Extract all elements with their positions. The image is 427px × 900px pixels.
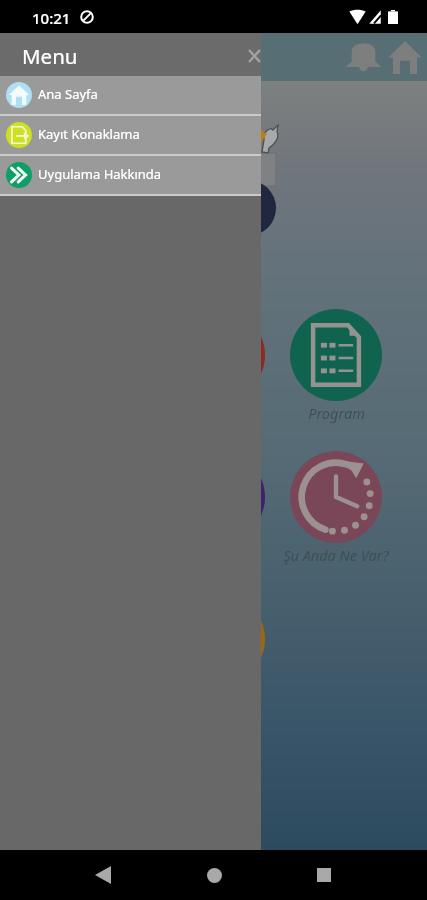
button[interactable]: Menu item — [173, 309, 265, 401]
button[interactable]: Back — [81, 853, 125, 897]
button[interactable]: Home — [192, 853, 236, 897]
staticText: 10:21 — [32, 8, 71, 28]
staticText: Menu — [22, 42, 78, 70]
button[interactable]: Menu item — [173, 593, 265, 685]
button[interactable]: Recents — [302, 853, 346, 897]
staticText: Uygulama Hakkında — [38, 165, 162, 183]
button[interactable] — [290, 451, 382, 543]
staticText: Kayıt Konaklama — [38, 125, 140, 143]
button[interactable]: Home — [383, 36, 426, 79]
button[interactable]: Notifications — [342, 35, 385, 78]
staticText: Ana Sayfa — [38, 85, 98, 103]
staticText: Program — [308, 403, 365, 423]
button[interactable] — [290, 309, 382, 401]
button[interactable]: Menu item — [173, 451, 265, 543]
button[interactable]: Kayıt Konaklama — [0, 116, 261, 154]
button[interactable]: Ana Sayfa — [0, 76, 261, 114]
button[interactable]: Close menu — [239, 41, 269, 71]
staticText: Şu Anda Ne Var? — [283, 545, 389, 565]
button[interactable]: Uygulama Hakkında — [0, 156, 261, 194]
